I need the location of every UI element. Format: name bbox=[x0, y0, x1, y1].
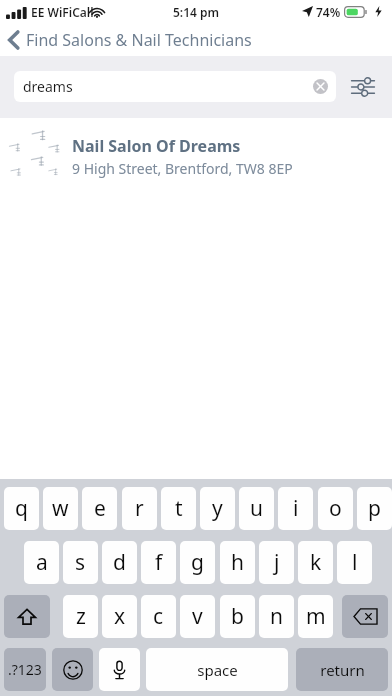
staticText: v bbox=[192, 602, 203, 631]
button[interactable]: c bbox=[141, 595, 176, 638]
staticText: g bbox=[191, 548, 204, 577]
button[interactable]: Nail Salon Of Dreams bbox=[0, 118, 392, 186]
button[interactable]: .?123 bbox=[4, 648, 46, 691]
staticText: t bbox=[175, 494, 183, 523]
button[interactable]: dreams bbox=[14, 71, 336, 102]
staticText: w bbox=[52, 494, 69, 523]
button[interactable]: n bbox=[259, 595, 294, 638]
staticText: e bbox=[94, 494, 106, 523]
button[interactable]: q bbox=[4, 487, 39, 530]
button[interactable]: e bbox=[82, 487, 117, 530]
staticText: space bbox=[197, 660, 238, 680]
button[interactable]: w bbox=[43, 487, 78, 530]
staticText: 74% bbox=[316, 4, 341, 20]
staticText: u bbox=[250, 494, 263, 523]
staticText: h bbox=[231, 548, 244, 577]
button[interactable]: p bbox=[357, 487, 392, 530]
button[interactable]: Filter bbox=[350, 74, 376, 100]
staticText: j bbox=[274, 548, 280, 577]
button[interactable]: f bbox=[141, 541, 176, 584]
button[interactable]: k bbox=[298, 541, 333, 584]
staticText: z bbox=[76, 602, 86, 631]
button[interactable]: b bbox=[220, 595, 255, 638]
button[interactable]: r bbox=[122, 487, 157, 530]
staticText: y bbox=[212, 494, 223, 523]
staticText: b bbox=[231, 602, 244, 631]
button[interactable]: d bbox=[102, 541, 137, 584]
button[interactable]: o bbox=[318, 487, 353, 530]
staticText: a bbox=[36, 548, 48, 577]
button[interactable]: Clear search bbox=[313, 79, 328, 94]
staticText: Find Salons & Nail Technicians bbox=[26, 29, 252, 51]
staticText: o bbox=[329, 494, 342, 523]
staticText: d bbox=[113, 548, 126, 577]
staticText: m bbox=[306, 602, 326, 631]
button[interactable]: h bbox=[220, 541, 255, 584]
button[interactable]: t bbox=[161, 487, 196, 530]
button[interactable]: Emoji bbox=[52, 648, 93, 691]
staticText: .?123 bbox=[8, 660, 42, 679]
button[interactable]: return bbox=[296, 648, 388, 691]
button[interactable]: m bbox=[298, 595, 333, 638]
button[interactable]: z bbox=[63, 595, 98, 638]
staticText: x bbox=[114, 602, 126, 631]
button[interactable]: s bbox=[63, 541, 98, 584]
button[interactable]: Back bbox=[0, 27, 260, 53]
staticText: Nail Salon Of Dreams bbox=[72, 135, 241, 157]
staticText: 5:14 pm bbox=[173, 4, 220, 20]
staticText: return bbox=[320, 660, 365, 680]
staticText: i bbox=[293, 494, 299, 523]
button[interactable]: space bbox=[146, 648, 288, 691]
staticText: 9 High Street, Brentford, TW8 8EP bbox=[72, 159, 293, 178]
button[interactable]: x bbox=[102, 595, 137, 638]
button[interactable]: i bbox=[278, 487, 313, 530]
staticText: l bbox=[352, 548, 358, 577]
button[interactable]: j bbox=[259, 541, 294, 584]
button[interactable]: v bbox=[180, 595, 215, 638]
staticText: f bbox=[155, 548, 163, 577]
button[interactable]: Shift bbox=[4, 595, 50, 638]
staticText: n bbox=[270, 602, 283, 631]
staticText: dreams bbox=[23, 77, 73, 96]
button[interactable]: y bbox=[200, 487, 235, 530]
staticText: EE WiFiCall bbox=[31, 4, 94, 20]
staticText: r bbox=[135, 494, 144, 523]
button[interactable]: Backspace bbox=[342, 595, 388, 638]
staticText: k bbox=[310, 548, 322, 577]
button[interactable]: g bbox=[180, 541, 215, 584]
staticText: p bbox=[368, 494, 381, 523]
button[interactable]: Dictate bbox=[99, 648, 140, 691]
staticText: s bbox=[75, 548, 86, 577]
button[interactable]: u bbox=[239, 487, 274, 530]
button[interactable]: l bbox=[337, 541, 372, 584]
button[interactable]: a bbox=[24, 541, 59, 584]
staticText: c bbox=[153, 602, 164, 631]
staticText: q bbox=[15, 494, 28, 523]
